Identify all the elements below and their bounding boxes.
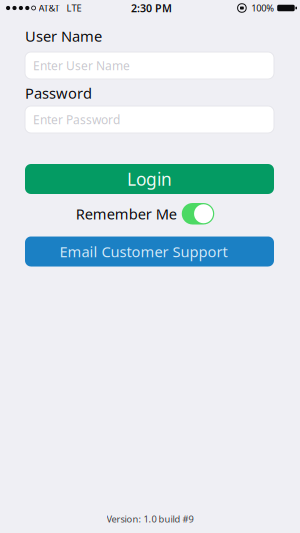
staticText: Login: [127, 167, 172, 190]
staticText: Password: [25, 83, 92, 103]
staticText: Version: 1.0 build #9: [106, 513, 193, 525]
staticText: LTE: [67, 2, 82, 14]
button[interactable]: Email Customer Support: [25, 236, 274, 266]
staticText: Remember Me: [76, 204, 177, 223]
button[interactable]: Enter Password: [25, 106, 274, 133]
staticText: Email Customer Support: [59, 242, 227, 261]
staticText: 2:30 PM: [131, 1, 172, 15]
staticText: AT&T: [39, 2, 60, 14]
staticText: Enter Password: [33, 111, 120, 127]
staticText: User Name: [25, 26, 102, 46]
button[interactable]: Enter User Name: [25, 52, 274, 79]
staticText: Enter User Name: [33, 57, 130, 73]
button[interactable]: Login: [25, 164, 274, 194]
staticText: 100%: [251, 2, 274, 14]
button[interactable]: Remember Me: [182, 203, 214, 224]
